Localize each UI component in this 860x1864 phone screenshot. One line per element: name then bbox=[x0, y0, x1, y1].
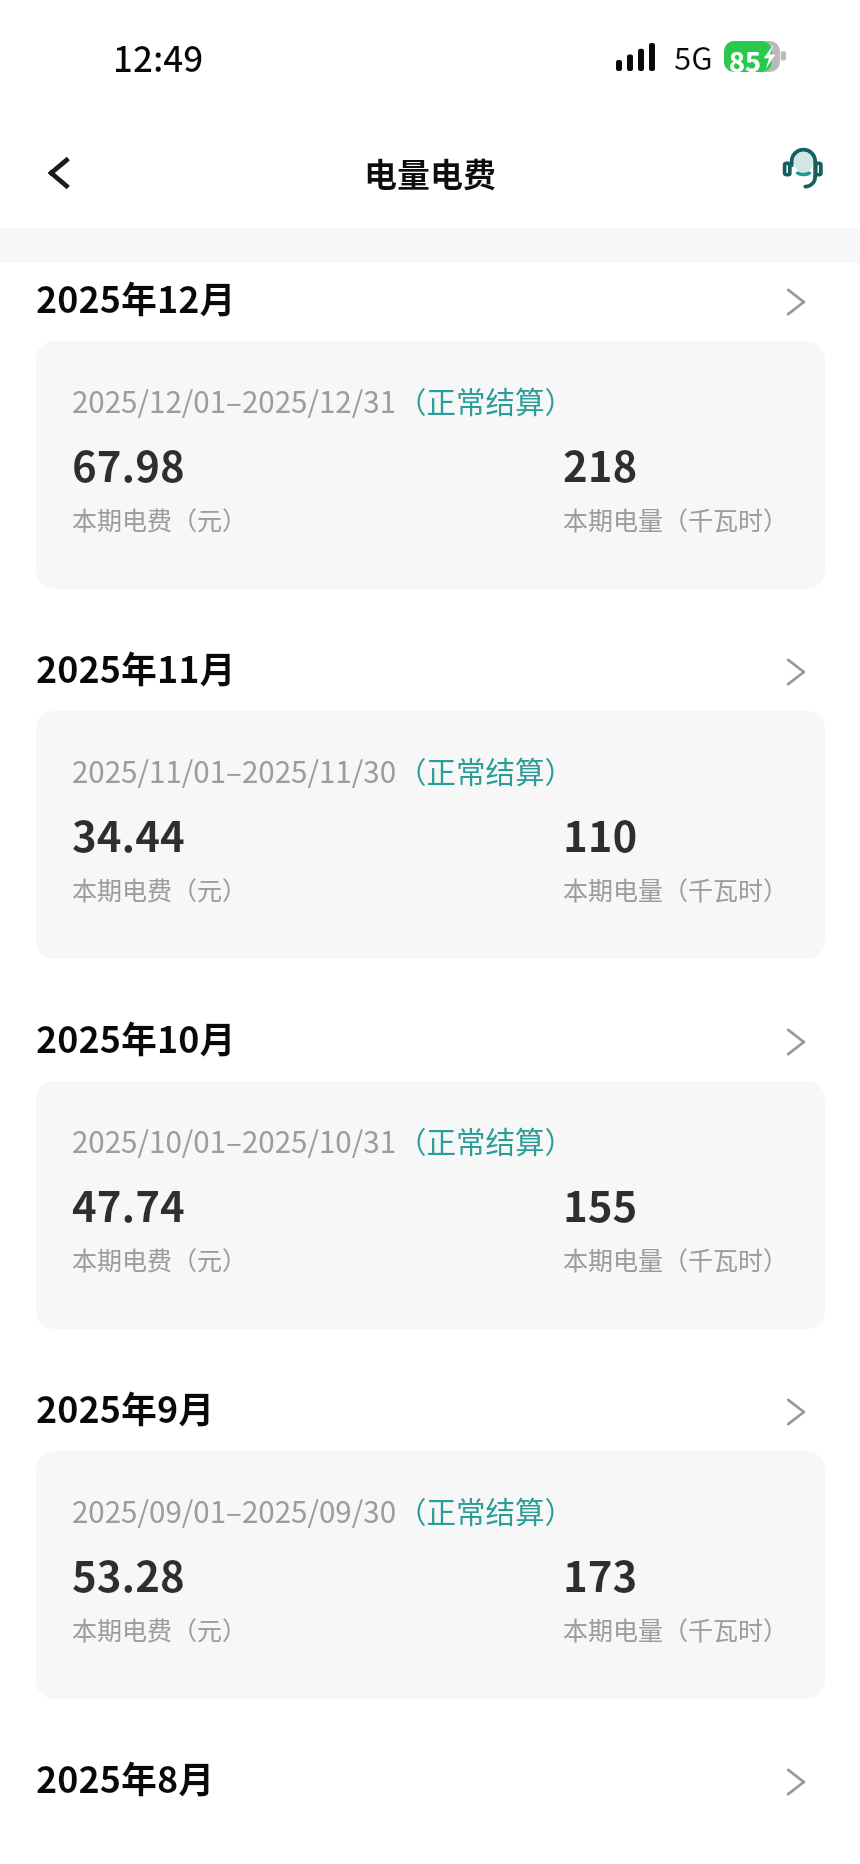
button[interactable]: 2025/11/01–2025/11/30 bbox=[36, 711, 825, 959]
staticText: 12:49 bbox=[113, 31, 204, 82]
button[interactable]: 2025年8月 bbox=[0, 1743, 860, 1821]
staticText: 2025年9月 bbox=[36, 1381, 215, 1433]
button[interactable]: 2025年11月 bbox=[0, 633, 860, 711]
button[interactable]: 2025/10/01–2025/10/31 bbox=[36, 1081, 825, 1329]
button[interactable]: Back bbox=[26, 140, 92, 206]
button[interactable]: 2025/12/01–2025/12/31 bbox=[36, 341, 825, 589]
staticText: 2025/12/01–2025/12/31 bbox=[72, 379, 397, 422]
button[interactable]: 2025年10月 bbox=[0, 1003, 860, 1081]
staticText: 本期电量（千瓦时） bbox=[563, 871, 789, 907]
staticText: （正常结算） bbox=[397, 749, 575, 792]
staticText: 2025年11月 bbox=[36, 641, 236, 693]
staticText: 2025年12月 bbox=[36, 271, 236, 323]
staticText: 本期电费（元） bbox=[72, 1241, 248, 1277]
staticText: 53.28 bbox=[72, 1543, 185, 1604]
staticText: 本期电费（元） bbox=[72, 1611, 248, 1647]
staticText: 本期电量（千瓦时） bbox=[563, 1241, 789, 1277]
button[interactable]: Customer service bbox=[774, 138, 844, 208]
staticText: 本期电费（元） bbox=[72, 871, 248, 907]
staticText: （正常结算） bbox=[397, 1489, 575, 1532]
staticText: 5G bbox=[674, 34, 713, 79]
staticText: 本期电费（元） bbox=[72, 501, 248, 537]
staticText: 2025/11/01–2025/11/30 bbox=[72, 749, 397, 792]
staticText: 2025年10月 bbox=[36, 1011, 236, 1063]
staticText: 110 bbox=[563, 803, 638, 864]
button[interactable]: 2025年9月 bbox=[0, 1373, 860, 1451]
staticText: 本期电量（千瓦时） bbox=[563, 1611, 789, 1647]
staticText: 155 bbox=[563, 1173, 638, 1234]
staticText: 47.74 bbox=[72, 1173, 185, 1234]
button[interactable]: 2025年12月 bbox=[0, 263, 860, 341]
staticText: 2025/10/01–2025/10/31 bbox=[72, 1119, 397, 1162]
button[interactable]: 2025/09/01–2025/09/30 bbox=[36, 1451, 825, 1699]
staticText: （正常结算） bbox=[397, 1119, 575, 1162]
staticText: 电量电费 bbox=[364, 149, 496, 197]
staticText: 85 bbox=[729, 41, 761, 72]
staticText: 2025/09/01–2025/09/30 bbox=[72, 1489, 397, 1532]
staticText: （正常结算） bbox=[397, 379, 575, 422]
staticText: 本期电量（千瓦时） bbox=[563, 501, 789, 537]
staticText: 173 bbox=[563, 1543, 638, 1604]
staticText: 218 bbox=[563, 433, 638, 494]
staticText: 34.44 bbox=[72, 803, 185, 864]
staticText: 2025年8月 bbox=[36, 1751, 215, 1803]
staticText: 67.98 bbox=[72, 433, 185, 494]
